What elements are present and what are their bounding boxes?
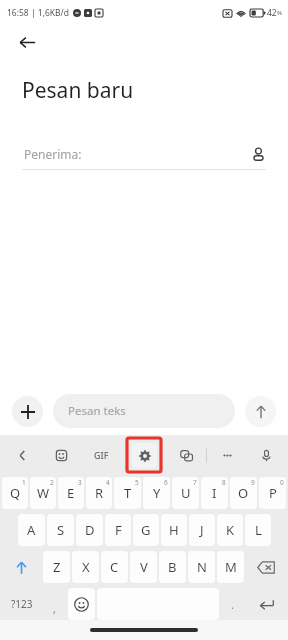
button[interactable]: L [245, 514, 271, 546]
staticText: 6 [164, 478, 168, 487]
staticText: E [67, 484, 75, 502]
staticText: F [115, 521, 122, 539]
staticText: N [197, 558, 207, 576]
button[interactable]: Add attachment [12, 396, 43, 427]
staticText: B [168, 558, 177, 576]
button[interactable]: R [86, 477, 112, 509]
staticText: 0 [280, 478, 284, 487]
button[interactable]: ?123 [2, 588, 41, 620]
button[interactable]: Pick contact [246, 142, 270, 166]
button[interactable]: I [201, 477, 228, 509]
staticText: Pesan teks [68, 403, 126, 419]
button[interactable]: N [188, 551, 215, 583]
button[interactable]: Emoji [68, 588, 95, 620]
button[interactable]: T [114, 477, 141, 509]
button[interactable]: A [18, 514, 45, 546]
staticText: K [226, 521, 235, 539]
staticText: GIF [94, 449, 109, 461]
button[interactable]: Previous [8, 441, 36, 469]
staticText: I [212, 484, 217, 502]
button[interactable]: Keyboard settings [132, 443, 157, 468]
staticText: C [110, 558, 119, 576]
button[interactable]: Y [143, 477, 170, 509]
button[interactable]: J [189, 514, 215, 546]
staticText: 16:58 | 1,6KB/d [7, 7, 70, 19]
button[interactable]: E [58, 477, 84, 509]
button[interactable]: Stickers [47, 441, 75, 469]
button[interactable]: Backspace [246, 551, 286, 583]
staticText: 4 [106, 478, 110, 487]
staticText: H [169, 521, 179, 539]
button[interactable]: Back [12, 27, 42, 57]
staticText: S [57, 521, 65, 539]
staticText: 7 [193, 478, 197, 487]
staticText: R [95, 484, 104, 502]
staticText: Pesan baru [22, 76, 134, 105]
button[interactable]: S [47, 514, 74, 546]
staticText: J [200, 521, 204, 539]
staticText: ?123 [11, 597, 33, 611]
staticText: X [82, 558, 90, 576]
staticText: L [255, 521, 262, 539]
button[interactable]: V [130, 551, 157, 583]
staticText: Y [153, 484, 161, 502]
button[interactable]: G [133, 514, 159, 546]
staticText: V [140, 558, 148, 576]
staticText: G [141, 521, 151, 539]
button[interactable]: F [105, 514, 131, 546]
staticText: 8 [222, 478, 226, 487]
button[interactable]: C [101, 551, 128, 583]
staticText: D [85, 521, 95, 539]
button[interactable]: Voice input [252, 441, 280, 469]
button[interactable]: Q [2, 477, 28, 509]
staticText: W [37, 484, 50, 502]
staticText: Penerima: [24, 146, 82, 162]
staticText: U [181, 484, 191, 502]
button[interactable]: Z [43, 551, 70, 583]
staticText: 9 [251, 478, 255, 487]
staticText: % [277, 9, 282, 17]
button[interactable]: Pesan teks [53, 394, 235, 428]
staticText: 3 [78, 478, 82, 487]
button[interactable]: Translate [172, 441, 200, 469]
staticText: 2 [50, 478, 54, 487]
button[interactable]: W [30, 477, 56, 509]
button[interactable]: . [221, 588, 244, 620]
button[interactable]: U [172, 477, 199, 509]
button[interactable]: P [259, 477, 286, 509]
staticText: O [238, 484, 249, 502]
staticText: 5 [135, 478, 139, 487]
staticText: 1 [22, 478, 26, 487]
button[interactable]: GIF [86, 440, 116, 470]
button[interactable]: Penerima: [0, 139, 288, 169]
staticText: Z [53, 558, 61, 576]
button[interactable]: , [43, 588, 66, 620]
button[interactable]: O [230, 477, 257, 509]
staticText: P [269, 484, 277, 502]
button[interactable]: Send [245, 396, 276, 427]
staticText: 42 [267, 7, 277, 19]
staticText: . [231, 597, 234, 612]
staticText: T [124, 484, 132, 502]
button[interactable]: B [159, 551, 186, 583]
button[interactable]: K [217, 514, 243, 546]
button[interactable]: More options [213, 441, 241, 469]
button[interactable]: Enter [246, 588, 286, 620]
button[interactable]: Shift [2, 551, 41, 583]
button[interactable]: M [217, 551, 244, 583]
button[interactable]: H [161, 514, 187, 546]
staticText: M [225, 558, 237, 576]
button[interactable]: X [72, 551, 99, 583]
staticText: A [27, 521, 36, 539]
button[interactable]: D [76, 514, 103, 546]
staticText: , [53, 601, 56, 616]
staticText: Q [10, 484, 21, 502]
